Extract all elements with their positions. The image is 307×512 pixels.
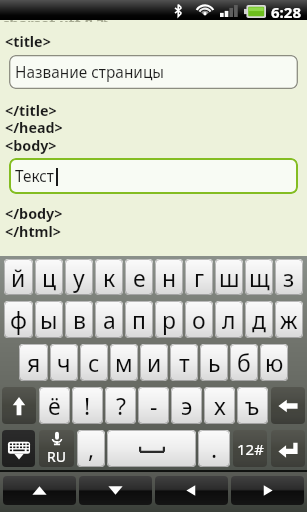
staticText: п (132, 304, 146, 335)
button[interactable]: я (19, 344, 48, 381)
button[interactable]: п (125, 301, 153, 338)
staticText: <title> (5, 32, 51, 51)
button[interactable]: Move left (155, 476, 228, 505)
button[interactable]: л (215, 301, 243, 338)
button[interactable]: г (185, 259, 213, 295)
staticText: и (147, 347, 162, 378)
button[interactable]: б (230, 344, 258, 381)
staticText: ж (280, 304, 298, 335)
button[interactable]: и (140, 344, 168, 381)
button[interactable]: с (80, 344, 108, 381)
button[interactable]: Backspace (271, 387, 305, 424)
staticText: <body> (5, 136, 57, 155)
staticText: ё (48, 390, 61, 421)
button[interactable]: н (155, 259, 183, 295)
button[interactable]: е (125, 259, 153, 295)
staticText: в (73, 304, 86, 335)
button[interactable]: - (138, 387, 169, 424)
button[interactable]: в (65, 301, 93, 338)
button[interactable]: Shift (2, 387, 36, 424)
button[interactable]: ! (72, 387, 103, 424)
button[interactable]: Enter (271, 430, 305, 467)
staticText: </title> (5, 101, 57, 120)
staticText: а (103, 304, 116, 335)
button[interactable]: Move down (79, 476, 152, 505)
staticText: ш (219, 262, 240, 293)
staticText: , (88, 433, 95, 464)
staticText: ч (57, 347, 71, 378)
staticText: х (214, 390, 226, 421)
staticText: ы (40, 304, 58, 335)
staticText: т (179, 347, 190, 378)
staticText: р (162, 304, 176, 335)
button[interactable]: Move up (3, 476, 76, 505)
button[interactable]: з (275, 259, 303, 295)
staticText: е (133, 262, 146, 293)
button[interactable]: Текст (9, 158, 298, 194)
staticText: у (73, 262, 85, 293)
button[interactable]: щ (245, 259, 273, 295)
staticText: ? (116, 390, 126, 421)
button[interactable]: Voice input, Russian (39, 430, 74, 467)
button[interactable]: Название страницы (9, 55, 298, 89)
staticText: м (115, 347, 133, 378)
button[interactable]: а (95, 301, 123, 338)
button[interactable]: ч (50, 344, 78, 381)
button[interactable]: т (170, 344, 198, 381)
staticText: . (211, 433, 218, 464)
button[interactable]: Change keyboard (2, 430, 35, 467)
button[interactable]: . (198, 430, 230, 467)
staticText: </html> (5, 222, 61, 241)
button[interactable]: 12# (233, 430, 267, 467)
button[interactable]: Move right (231, 476, 304, 505)
button[interactable]: р (155, 301, 183, 338)
button[interactable]: ц (35, 259, 63, 295)
button[interactable]: ш (215, 259, 243, 295)
button[interactable]: ? (105, 387, 136, 424)
staticText: ! (84, 390, 91, 421)
button[interactable]: ь (200, 344, 228, 381)
button[interactable]: ж (275, 301, 303, 338)
staticText: ю (265, 347, 284, 378)
staticText: ъ (245, 390, 260, 421)
button[interactable]: м (110, 344, 138, 381)
button[interactable]: х (204, 387, 235, 424)
staticText: </body> (5, 204, 63, 223)
button[interactable] (107, 430, 196, 467)
staticText: ь (208, 347, 221, 378)
button[interactable]: й (4, 259, 33, 295)
staticText: ф (10, 304, 27, 335)
staticText: RU (47, 447, 66, 466)
staticText: з (283, 262, 295, 293)
staticText: г (194, 262, 205, 293)
staticText: б (237, 347, 251, 378)
staticText: к (103, 262, 116, 293)
staticText: </head> (5, 118, 63, 137)
staticText: - (150, 390, 158, 421)
button[interactable]: ы (35, 301, 63, 338)
button[interactable]: у (65, 259, 93, 295)
button[interactable]: к (95, 259, 123, 295)
button[interactable]: , (77, 430, 105, 467)
staticText: с (88, 347, 100, 378)
staticText: 12# (237, 439, 264, 459)
staticText: я (27, 347, 41, 378)
button[interactable]: ъ (237, 387, 268, 424)
staticText: 6:28 (271, 2, 301, 22)
button[interactable]: о (185, 301, 213, 338)
staticText: Название страницы (15, 62, 164, 83)
button[interactable]: ё (39, 387, 70, 424)
staticText: л (222, 304, 236, 335)
button[interactable]: ф (4, 301, 33, 338)
staticText: ц (42, 262, 57, 293)
button[interactable]: д (245, 301, 273, 338)
staticText: д (252, 304, 266, 335)
button[interactable]: ю (260, 344, 288, 381)
staticText: charset utf-8 ?> (2, 20, 112, 22)
staticText: й (11, 262, 26, 293)
button[interactable]: э (171, 387, 202, 424)
staticText: щ (249, 262, 270, 293)
staticText: о (192, 304, 206, 335)
staticText: н (162, 262, 177, 293)
staticText: э (181, 390, 193, 421)
